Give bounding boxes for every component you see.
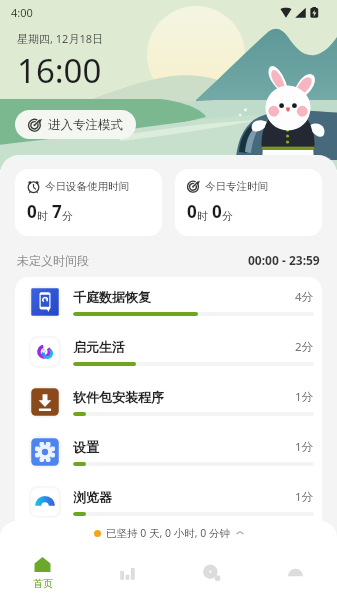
staticText: 16:00 xyxy=(17,48,102,93)
staticText: 未定义时间段 xyxy=(17,253,89,268)
staticText: 已坚持 0 天, 0 小时, 0 分钟 xyxy=(106,526,231,540)
button[interactable]: 进入专注模式 xyxy=(15,110,136,139)
staticText: 1分 xyxy=(295,439,314,455)
staticText: 时 xyxy=(37,209,48,223)
staticText: 1分 xyxy=(295,389,314,405)
button[interactable]: Tab 3 xyxy=(253,545,337,600)
staticText: 今日设备使用时间 xyxy=(45,180,129,193)
staticText: 时 xyxy=(197,209,208,223)
button[interactable]: 今日专注时间 xyxy=(175,169,322,236)
button[interactable]: 今日设备使用时间 xyxy=(15,169,162,236)
staticText: 千庭数据恢复 xyxy=(73,289,151,305)
staticText: 启元生活 xyxy=(73,339,125,355)
button[interactable]: Tab 1 xyxy=(85,545,169,600)
button[interactable]: Tab 2 xyxy=(169,545,253,600)
staticText: 今日专注时间 xyxy=(205,180,268,193)
staticText: 1分 xyxy=(295,489,314,505)
staticText: 分 xyxy=(62,209,73,223)
button[interactable]: 首页 xyxy=(0,545,85,600)
button[interactable]: 启元生活 xyxy=(15,327,322,377)
button[interactable]: 浏览器 xyxy=(15,477,322,527)
staticText: 2分 xyxy=(295,339,314,355)
staticText: 浏览器 xyxy=(73,489,112,505)
staticText: 4分 xyxy=(295,289,314,305)
staticText: 设置 xyxy=(73,439,99,455)
button[interactable]: 千庭数据恢复 xyxy=(15,277,322,327)
staticText: 星期四, 12月18日 xyxy=(17,31,103,46)
staticText: 软件包安装程序 xyxy=(73,389,164,405)
staticText: 首页 xyxy=(33,577,53,590)
staticText: 00:00 - 23:59 xyxy=(248,252,320,268)
staticText: 7 xyxy=(52,200,62,223)
staticText: 0 xyxy=(187,200,197,223)
staticText: 分 xyxy=(222,209,233,223)
staticText: 0 xyxy=(212,200,222,223)
staticText: 0 xyxy=(27,200,37,223)
staticText: 4:00 xyxy=(11,5,33,20)
staticText: 进入专注模式 xyxy=(48,117,123,133)
button[interactable]: 软件包安装程序 xyxy=(15,377,322,427)
button[interactable]: 设置 xyxy=(15,427,322,477)
